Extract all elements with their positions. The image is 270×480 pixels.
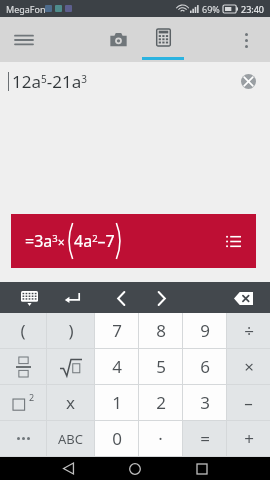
- button[interactable]: 8: [139, 313, 182, 348]
- button[interactable]: Clear: [234, 67, 262, 95]
- staticText: =: [200, 427, 210, 450]
- button[interactable]: x: [47, 385, 94, 420]
- button[interactable]: Hide keyboard: [14, 283, 44, 313]
- button[interactable]: 7: [95, 313, 138, 348]
- button[interactable]: (: [0, 313, 46, 348]
- button[interactable]: 4: [95, 349, 138, 384]
- staticText: –: [244, 391, 253, 414]
- button[interactable]: ·: [139, 421, 182, 456]
- staticText: 12a5-21a3: [12, 70, 87, 93]
- staticText: 23:40: [241, 3, 265, 15]
- button[interactable]: ): [47, 313, 94, 348]
- staticText: ): [68, 319, 74, 342]
- button[interactable]: Steps: [220, 228, 246, 254]
- staticText: 6: [200, 355, 210, 378]
- button[interactable]: Backspace: [228, 283, 258, 313]
- staticText: 8: [156, 319, 166, 342]
- button[interactable]: ÷: [227, 313, 270, 348]
- staticText: (: [20, 319, 26, 342]
- button[interactable]: Home: [123, 457, 147, 480]
- button[interactable]: –: [227, 385, 270, 420]
- staticText: ABC: [58, 430, 83, 448]
- staticText: MegaFon: [6, 3, 46, 15]
- button[interactable]: DOTS: [0, 421, 46, 456]
- button[interactable]: SQRT: [47, 349, 94, 384]
- staticText: 4a2–7: [74, 230, 115, 252]
- staticText: ·: [158, 427, 163, 450]
- staticText: 9: [200, 319, 210, 342]
- button[interactable]: Recents: [190, 457, 214, 480]
- button[interactable]: SQUARE: [0, 385, 46, 420]
- staticText: =3a3×: [25, 230, 65, 252]
- staticText: 2: [156, 391, 166, 414]
- button[interactable]: 5: [139, 349, 182, 384]
- button[interactable]: 6: [183, 349, 226, 384]
- button[interactable]: ×: [227, 349, 270, 384]
- button[interactable]: +: [227, 421, 270, 456]
- staticText: 7: [112, 319, 122, 342]
- button[interactable]: 0: [95, 421, 138, 456]
- button[interactable]: FRACTION: [0, 349, 46, 384]
- button[interactable]: Enter: [57, 283, 87, 313]
- staticText: 0: [112, 427, 122, 450]
- button[interactable]: Move left: [106, 283, 136, 313]
- staticText: ÷: [244, 319, 254, 342]
- staticText: 4: [112, 355, 122, 378]
- button[interactable]: Back: [56, 457, 80, 480]
- staticText: 3: [200, 391, 210, 414]
- staticText: 5: [156, 355, 166, 378]
- button[interactable]: ABC: [47, 421, 94, 456]
- button[interactable]: =3a3×: [11, 214, 256, 268]
- button[interactable]: =: [183, 421, 226, 456]
- staticText: 69%: [202, 3, 220, 15]
- button[interactable]: Camera: [96, 17, 140, 62]
- staticText: ×: [244, 355, 254, 378]
- button[interactable]: 9: [183, 313, 226, 348]
- staticText: +: [244, 427, 254, 450]
- staticText: 2: [29, 391, 35, 403]
- button[interactable]: Menu: [6, 22, 42, 58]
- staticText: x: [66, 391, 75, 414]
- button[interactable]: Move right: [146, 283, 176, 313]
- button[interactable]: More options: [228, 22, 264, 58]
- button[interactable]: 2: [139, 385, 182, 420]
- staticText: 1: [112, 391, 122, 414]
- button[interactable]: 1: [95, 385, 138, 420]
- button[interactable]: 3: [183, 385, 226, 420]
- button[interactable]: Calculator: [141, 17, 185, 62]
